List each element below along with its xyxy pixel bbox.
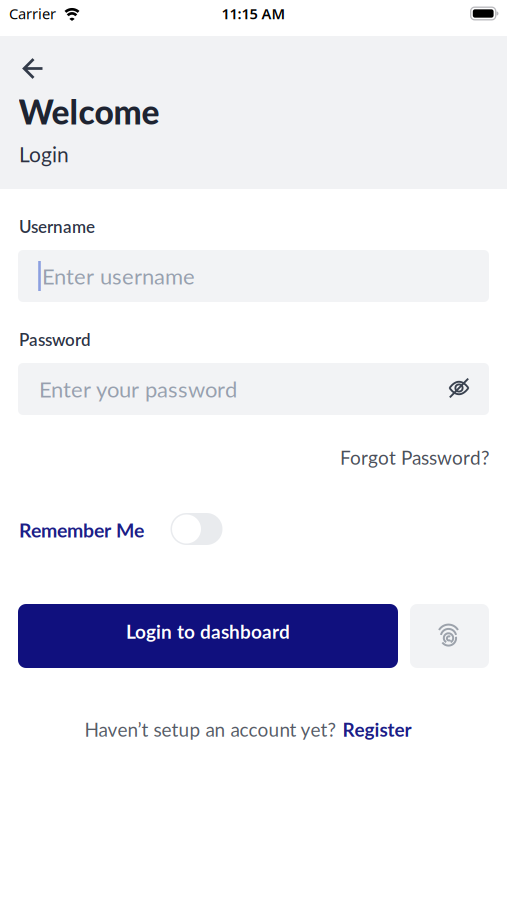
button[interactable]: Back [13, 50, 53, 86]
button[interactable]: Remember Me [170, 513, 222, 545]
staticText: Enter username [42, 263, 195, 289]
button[interactable]: Login with fingerprint [410, 604, 489, 668]
button[interactable]: Forgot Password? [340, 446, 490, 469]
staticText: Login [19, 141, 69, 167]
staticText: Haven’t setup an account yet? [84, 718, 336, 741]
button[interactable]: Login to dashboard [18, 604, 398, 668]
staticText: Password [19, 329, 91, 350]
staticText: Register [342, 718, 411, 741]
staticText: Welcome [18, 91, 159, 132]
staticText: Login to dashboard [126, 620, 290, 643]
button[interactable]: Register [342, 718, 411, 741]
staticText: 11:15 AM [221, 4, 285, 23]
button[interactable]: Show password [439, 366, 479, 410]
staticText: Remember Me [19, 518, 144, 542]
staticText: Enter your password [39, 376, 237, 402]
staticText: Username [19, 216, 95, 237]
staticText: Carrier [9, 4, 56, 23]
staticText: Forgot Password? [340, 446, 490, 469]
